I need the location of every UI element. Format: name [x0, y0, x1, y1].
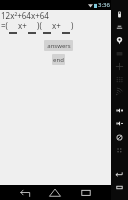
- button[interactable]: D-pad: [115, 62, 124, 71]
- staticText: )(: [37, 20, 42, 31]
- button[interactable]: answers: [44, 40, 73, 51]
- button[interactable]: Home: [49, 188, 61, 197]
- button[interactable]: Rotate: [115, 133, 124, 142]
- button[interactable]: More: [115, 146, 124, 155]
- button[interactable]: Power: [115, 10, 124, 19]
- staticText: =(: [1, 20, 8, 31]
- staticText: x+: [52, 20, 61, 31]
- button[interactable]: Volume down: [115, 119, 124, 128]
- button[interactable]: Location: [115, 36, 124, 45]
- button[interactable]: Volume up: [115, 106, 124, 115]
- button[interactable]: Keyboard: [115, 75, 124, 84]
- staticText: 12x²+64x+64: [1, 10, 49, 21]
- button[interactable]: Recent apps: [115, 183, 124, 192]
- button[interactable]: Recent apps: [81, 188, 91, 197]
- staticText: answers: [47, 42, 71, 50]
- staticText: 3:36: [98, 1, 110, 9]
- button[interactable]: Cellular: [115, 87, 124, 96]
- button[interactable]: Back: [115, 170, 124, 179]
- button[interactable]: Back: [20, 188, 31, 197]
- staticText: x+: [18, 20, 27, 31]
- button[interactable]: Volume: [115, 23, 124, 32]
- button[interactable]: end: [52, 54, 65, 65]
- staticText: end: [53, 56, 64, 64]
- staticText: ): [71, 20, 74, 31]
- button[interactable]: Camera: [115, 49, 124, 58]
